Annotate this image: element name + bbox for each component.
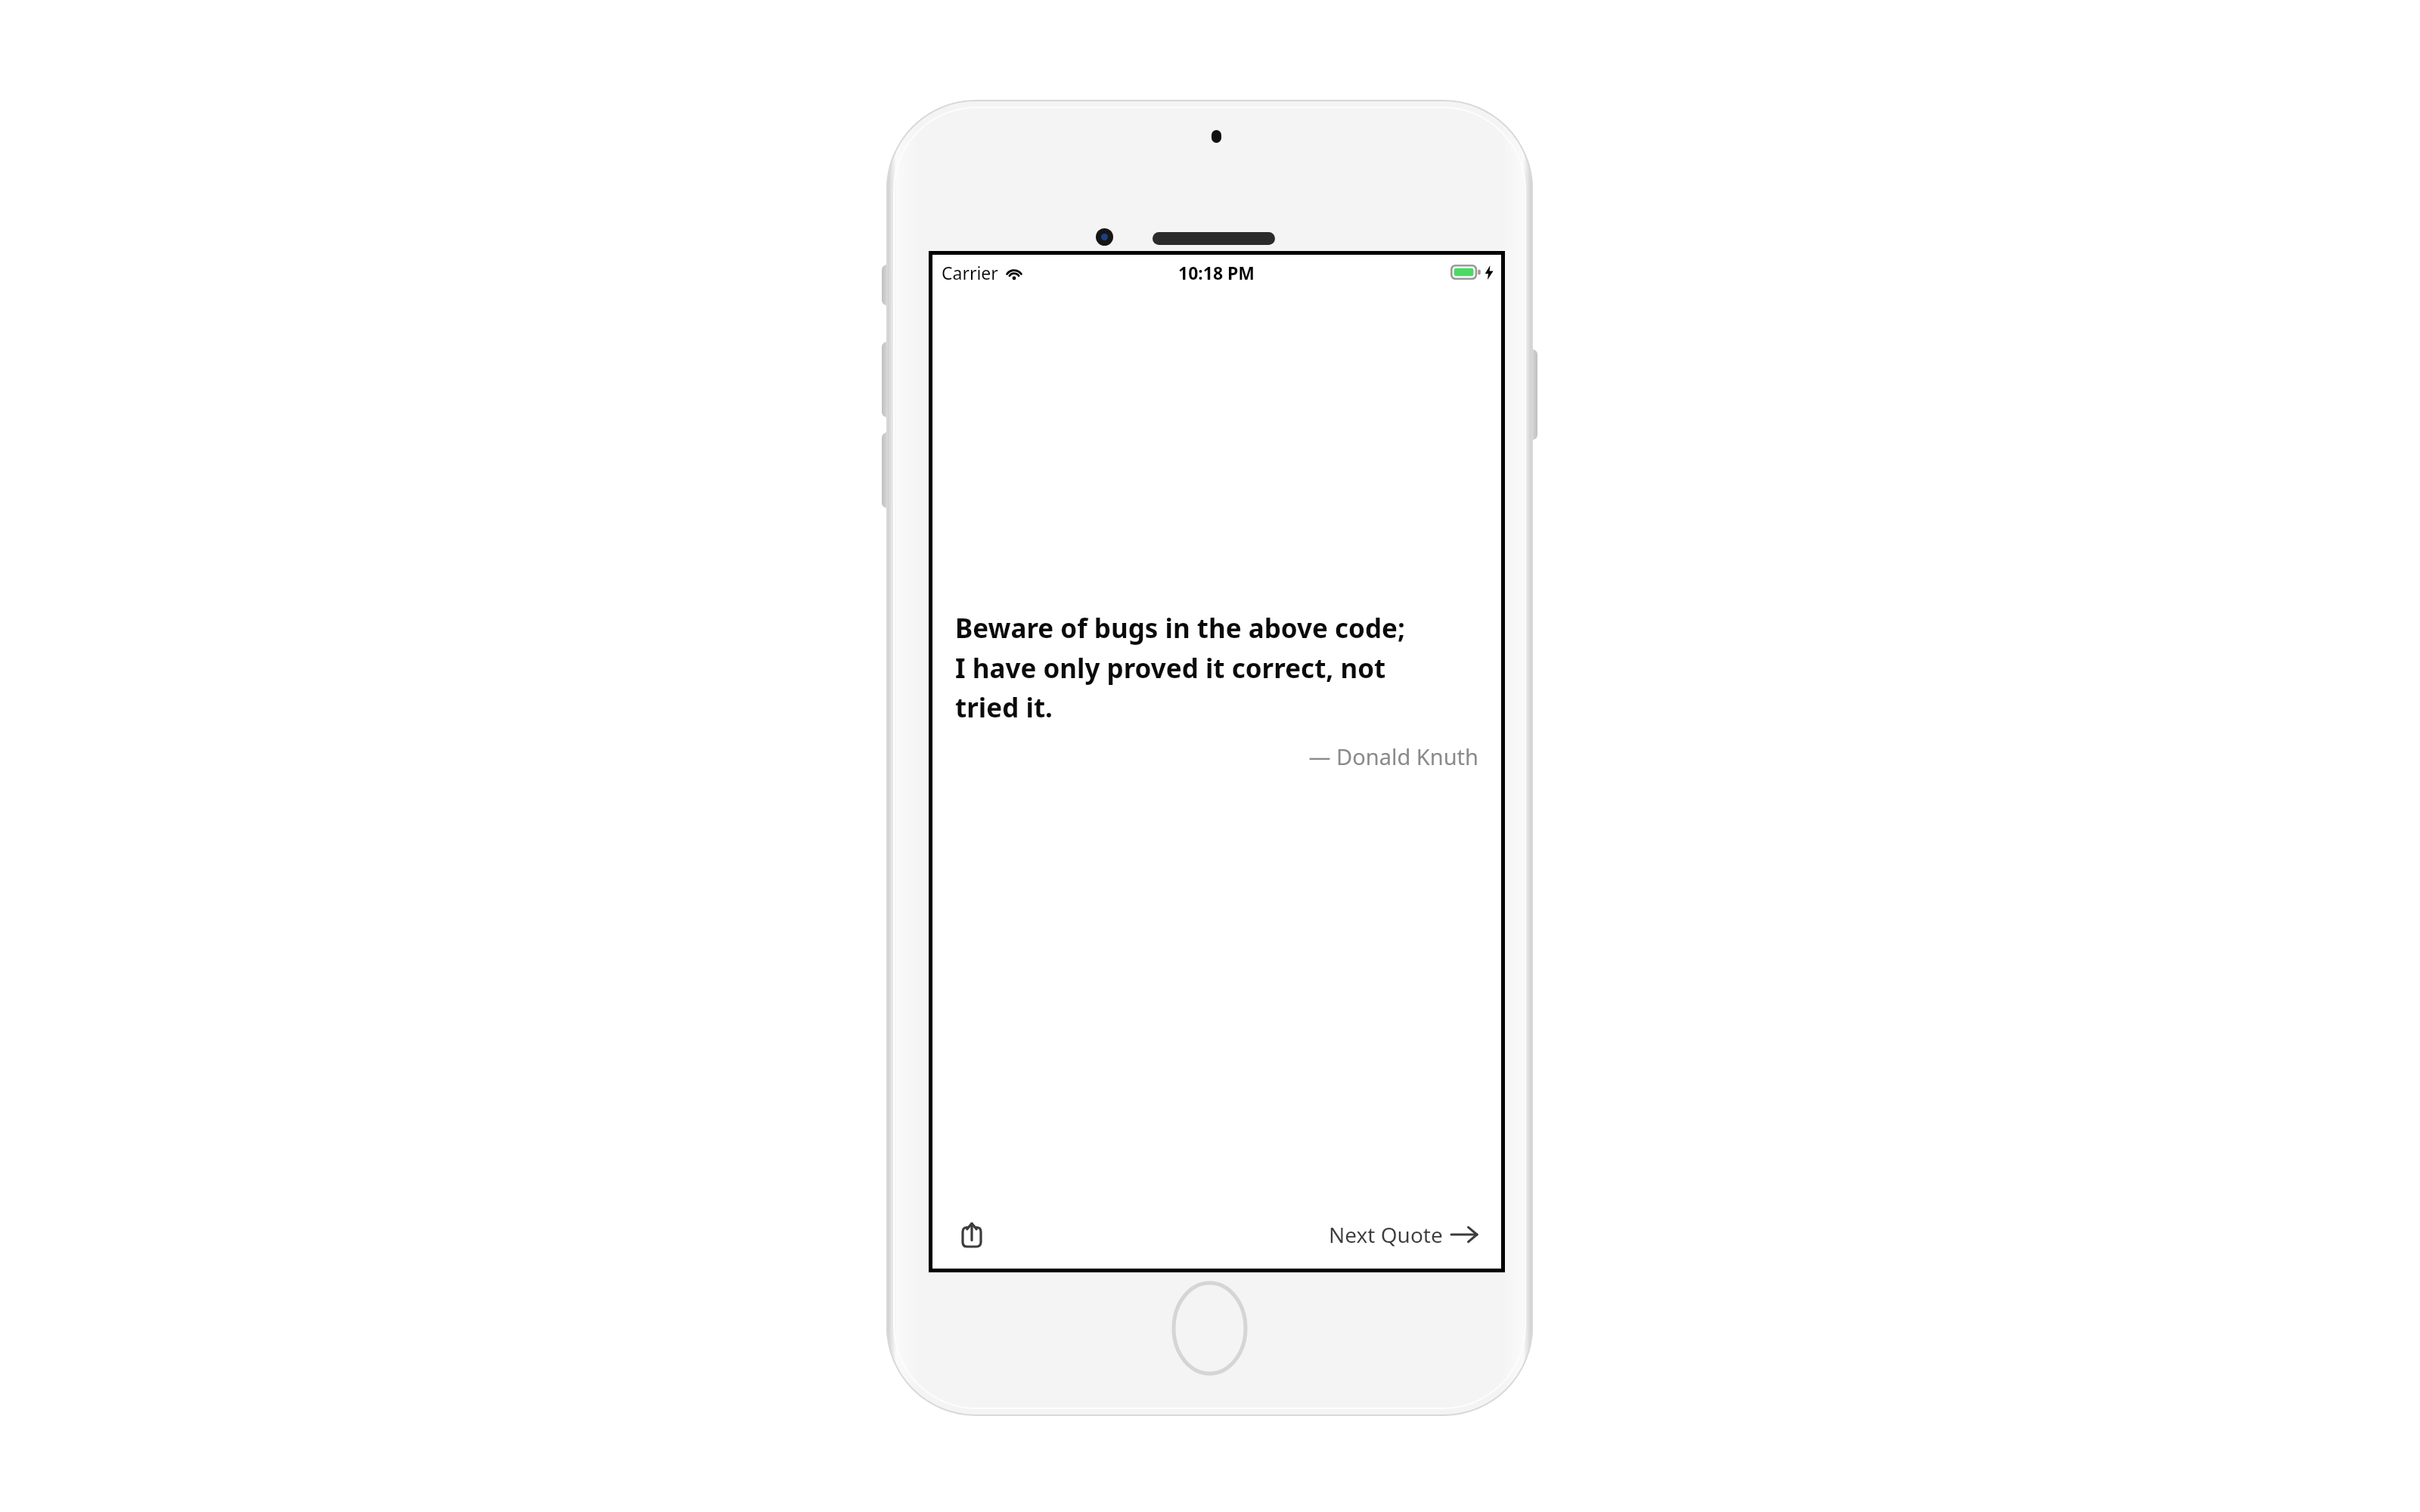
button[interactable]: Next Quote — [1324, 1214, 1481, 1255]
staticText: — Donald Knuth — [955, 742, 1478, 771]
staticText: Beware of bugs in the above code; I have… — [955, 610, 1405, 725]
staticText: 10:18 PM — [1178, 261, 1255, 284]
button[interactable]: Share quote — [952, 1215, 991, 1254]
staticText: Next Quote — [1329, 1220, 1443, 1249]
staticText: Carrier — [942, 261, 998, 284]
